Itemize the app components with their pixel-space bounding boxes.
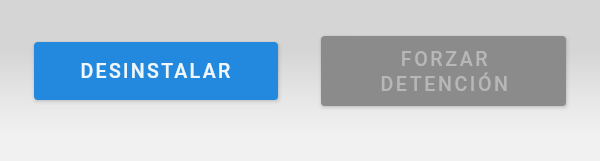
staticText: FORZAR DETENCIÓN (380, 48, 511, 96)
staticText: DESINSTALAR (80, 60, 233, 83)
button[interactable]: DESINSTALAR (34, 42, 278, 100)
button[interactable]: FORZAR DETENCIÓN (321, 36, 566, 106)
